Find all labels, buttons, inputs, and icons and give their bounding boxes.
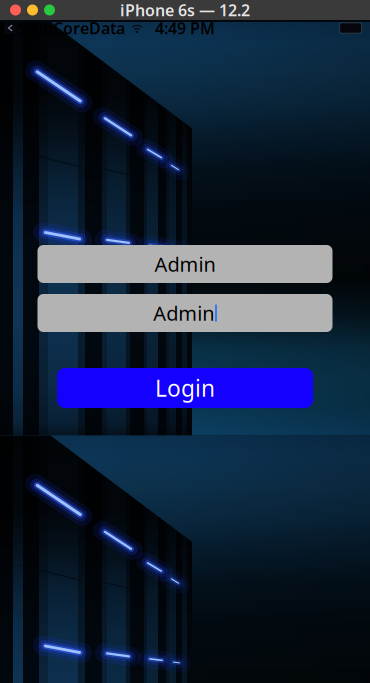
button[interactable]: Zoom window: [41, 4, 58, 15]
button[interactable]: Password field: [37, 294, 332, 332]
button[interactable]: Minimize window: [24, 4, 41, 15]
button[interactable]: Login: [57, 368, 313, 408]
staticText: 4:49 PM: [155, 17, 215, 39]
button[interactable]: Close window: [7, 4, 24, 15]
staticText: StudCoreData: [18, 17, 125, 39]
staticText: Admin: [154, 251, 215, 277]
staticText: Admin: [153, 300, 214, 326]
staticText: iPhone 6s — 12.2: [120, 0, 250, 21]
staticText: Login: [155, 373, 215, 403]
button[interactable]: Back to StudCoreData: [4, 17, 125, 39]
button[interactable]: Username field: [37, 245, 332, 283]
